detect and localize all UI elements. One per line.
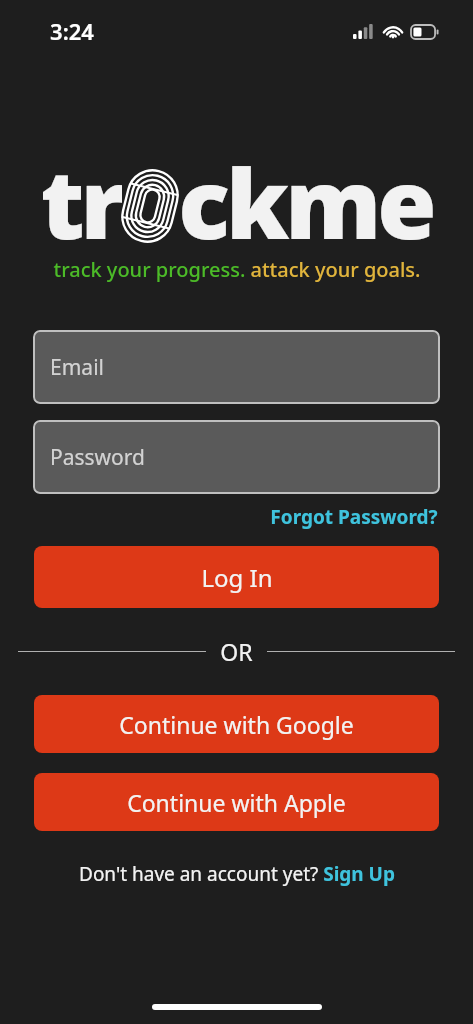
staticText: Log In xyxy=(201,561,273,594)
button[interactable]: Don't have an account yet? Sign Up xyxy=(75,857,399,891)
button[interactable]: Forgot Password? xyxy=(268,502,440,532)
staticText: track your progress. attack your goals. xyxy=(53,256,421,283)
staticText: 3:24 xyxy=(50,16,94,46)
button[interactable]: Continue with Google xyxy=(34,695,439,753)
staticText: Continue with Google xyxy=(119,709,354,740)
button[interactable]: Password xyxy=(33,420,440,494)
staticText: Password xyxy=(50,443,145,472)
staticText: Continue with Apple xyxy=(127,787,346,818)
button[interactable]: Continue with Apple xyxy=(34,773,439,831)
staticText: OR xyxy=(220,636,253,667)
staticText: Don't have an account yet? Sign Up xyxy=(79,861,395,887)
staticText: Forgot Password? xyxy=(270,504,438,530)
button[interactable]: Email xyxy=(33,330,440,404)
staticText: tr xyxy=(40,136,122,244)
button[interactable]: Log In xyxy=(34,546,439,608)
staticText: ckme xyxy=(178,136,433,244)
staticText: Email xyxy=(50,353,104,382)
